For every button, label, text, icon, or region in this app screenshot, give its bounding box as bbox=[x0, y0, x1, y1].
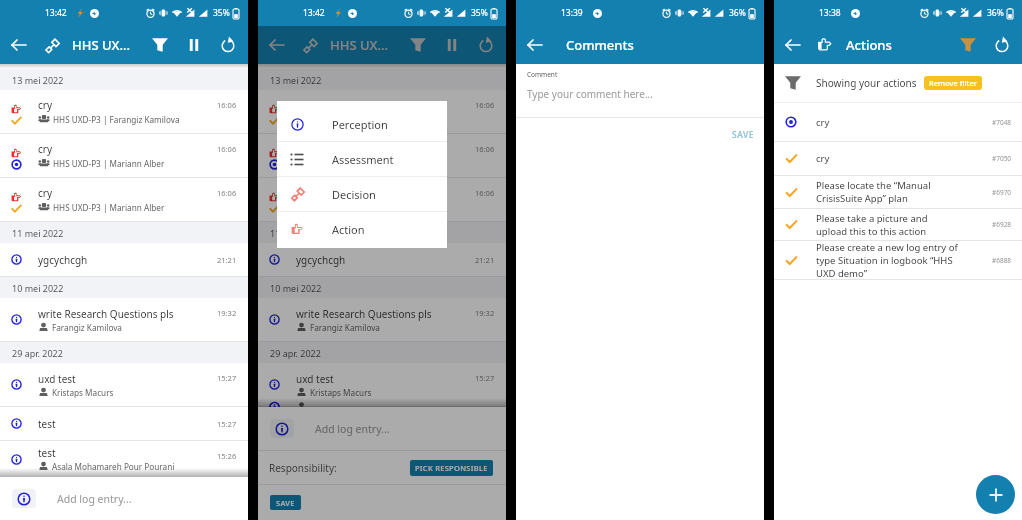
staticText: Showing your actions bbox=[816, 76, 917, 90]
staticText: 13:42 bbox=[303, 7, 325, 19]
staticText: 16:06 bbox=[217, 100, 237, 110]
staticText: Actions bbox=[846, 36, 892, 54]
staticText: 16:06 bbox=[475, 144, 495, 154]
button[interactable]: Please locate the “Manual CrisisSuite Ap… bbox=[774, 176, 1022, 209]
button[interactable]: ygcychcgh bbox=[0, 243, 248, 277]
staticText: 10 mei 2022 bbox=[270, 282, 322, 294]
button[interactable]: Decision bbox=[277, 177, 447, 211]
staticText: test bbox=[38, 446, 56, 460]
button[interactable]: cry bbox=[258, 178, 506, 222]
staticText: HHS UX… bbox=[330, 36, 389, 54]
button[interactable]: Filter bbox=[143, 28, 177, 62]
button[interactable]: Back bbox=[776, 28, 810, 62]
staticText: write Research Questions pls bbox=[38, 307, 174, 321]
staticText: 29 apr. 2022 bbox=[12, 347, 63, 359]
button[interactable]: cry bbox=[0, 178, 248, 222]
staticText: ygcychcgh bbox=[38, 253, 88, 267]
button[interactable]: SAVE bbox=[270, 495, 301, 510]
staticText: HHS UXD-P3 | Mariann Alber bbox=[53, 158, 165, 169]
button[interactable]: write Research Questions pls bbox=[0, 298, 248, 342]
button[interactable]: ygcychcgh bbox=[258, 243, 506, 277]
staticText: #6970 bbox=[992, 188, 1012, 197]
button[interactable]: SAVE bbox=[722, 123, 764, 147]
staticText: 13 mei 2022 bbox=[270, 74, 322, 86]
staticText: HHS UXD-P3 | Farangiz Kamilova bbox=[53, 114, 180, 125]
staticText: 35% bbox=[213, 7, 230, 19]
button[interactable]: test bbox=[0, 407, 248, 441]
button[interactable]: cry bbox=[774, 142, 1022, 176]
button[interactable]: Remove filter bbox=[924, 76, 982, 90]
button[interactable]: Refresh bbox=[211, 28, 245, 62]
button[interactable]: test bbox=[0, 441, 248, 477]
button[interactable]: Add action bbox=[976, 475, 1015, 514]
staticText: Responsibility: bbox=[269, 461, 337, 475]
button[interactable]: Refresh bbox=[985, 28, 1019, 62]
staticText: #7050 bbox=[992, 154, 1012, 163]
staticText: 36% bbox=[729, 7, 746, 19]
button[interactable]: cry bbox=[774, 103, 1022, 142]
staticText: 35% bbox=[471, 7, 488, 19]
button[interactable]: Pause bbox=[177, 28, 211, 62]
staticText: cry bbox=[296, 98, 311, 112]
button[interactable]: cry bbox=[0, 134, 248, 178]
button[interactable]: uxd test bbox=[0, 363, 248, 407]
button[interactable]: cry bbox=[0, 90, 248, 134]
staticText: SAVE bbox=[732, 129, 754, 141]
button[interactable]: PICK RESPONSIBLE bbox=[410, 460, 493, 476]
staticText: PICK RESPONSIBLE bbox=[415, 463, 488, 473]
button[interactable]: uxd test bbox=[258, 363, 506, 407]
staticText: HHS UX… bbox=[72, 36, 131, 54]
staticText: 16:06 bbox=[217, 144, 237, 154]
staticText: 16:06 bbox=[475, 188, 495, 198]
button[interactable]: Filter bbox=[401, 28, 435, 62]
button[interactable]: Refresh bbox=[469, 28, 503, 62]
staticText: SAVE bbox=[276, 498, 295, 508]
staticText: Please take a picture and upload this to… bbox=[816, 212, 992, 238]
staticText: Kristaps Macurs bbox=[310, 387, 372, 398]
button[interactable]: Back bbox=[2, 28, 36, 62]
staticText: Assessment bbox=[332, 152, 394, 167]
staticText: Comment bbox=[527, 70, 558, 79]
staticText: 21:21 bbox=[217, 255, 237, 265]
staticText: #6888 bbox=[992, 256, 1012, 265]
button[interactable]: Showing your actions bbox=[774, 64, 1022, 102]
staticText: #7048 bbox=[992, 118, 1012, 127]
staticText: cry bbox=[296, 142, 311, 156]
staticText: cry bbox=[38, 142, 53, 156]
staticText: 15:27 bbox=[217, 373, 237, 383]
staticText: ygcychcgh bbox=[296, 253, 346, 267]
button[interactable]: Add log entry... bbox=[258, 407, 506, 450]
button[interactable]: Pause bbox=[435, 28, 469, 62]
button[interactable]: Back bbox=[260, 28, 294, 62]
staticText: 16:06 bbox=[475, 100, 495, 110]
staticText: HHS UXD-P3 | Mariann Alber bbox=[311, 158, 423, 169]
button[interactable]: cry bbox=[258, 90, 506, 134]
button[interactable]: Perception bbox=[277, 107, 447, 141]
staticText: cry bbox=[816, 152, 992, 165]
button[interactable]: Please take a picture and upload this to… bbox=[774, 209, 1022, 241]
button[interactable]: Please create a new log entry of type Si… bbox=[774, 241, 1022, 280]
button[interactable]: write Research Questions pls bbox=[258, 298, 506, 342]
staticText: HHS UXD-P3 | Farangiz Kamilova bbox=[311, 114, 438, 125]
button[interactable]: Add log entry... bbox=[0, 477, 248, 520]
staticText: 19:32 bbox=[217, 308, 237, 318]
staticText: 13:39 bbox=[561, 7, 583, 19]
staticText: HHS UXD-P3 | Mariann Alber bbox=[311, 202, 423, 213]
staticText: Add log entry... bbox=[315, 422, 390, 436]
staticText: #6928 bbox=[992, 220, 1012, 229]
staticText: 19:32 bbox=[475, 308, 495, 318]
staticText: cry bbox=[816, 116, 992, 129]
staticText: 15:27 bbox=[475, 373, 495, 383]
staticText: Perception bbox=[332, 117, 388, 132]
staticText: Please create a new log entry of type Si… bbox=[816, 241, 992, 279]
staticText: Asala Mohamareh Pour Pourani bbox=[52, 461, 175, 472]
button[interactable]: cry bbox=[258, 134, 506, 178]
button[interactable]: Assessment bbox=[277, 142, 447, 176]
button[interactable]: Filter bbox=[951, 28, 985, 62]
staticText: Farangiz Kamilova bbox=[310, 322, 380, 333]
button[interactable]: Action bbox=[277, 212, 447, 246]
button[interactable]: Back bbox=[518, 28, 552, 62]
staticText: Decision bbox=[332, 187, 376, 202]
staticText: 13 mei 2022 bbox=[12, 74, 64, 86]
staticText: 11 mei 2022 bbox=[12, 227, 64, 239]
